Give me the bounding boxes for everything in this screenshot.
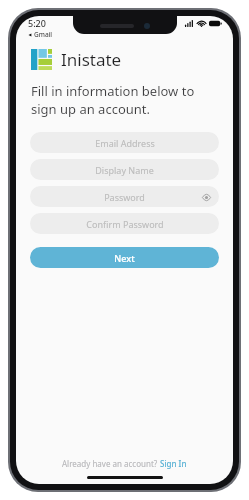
staticText: Already have an account? xyxy=(62,458,160,469)
button[interactable]: Next xyxy=(30,247,219,268)
staticText: Confirm Password xyxy=(86,218,164,230)
button[interactable]: Password xyxy=(30,186,219,207)
staticText: sign up an account. xyxy=(31,100,150,118)
staticText: Sign In xyxy=(160,458,187,469)
staticText: 5:20 xyxy=(28,17,46,29)
button[interactable]: Show password xyxy=(201,192,211,202)
button[interactable]: Confirm Password xyxy=(30,213,219,234)
staticText: Display Name xyxy=(95,164,154,176)
staticText: Next xyxy=(114,252,135,264)
staticText: Fill in information below to xyxy=(31,82,195,100)
staticText: Inistate xyxy=(61,48,122,71)
button[interactable]: Email Address xyxy=(30,132,219,153)
button[interactable]: Display Name xyxy=(30,159,219,180)
staticText: Email Address xyxy=(95,137,155,149)
staticText: Password xyxy=(104,191,145,203)
button[interactable]: Sign In xyxy=(160,458,187,469)
staticText: Gmail xyxy=(34,30,53,39)
